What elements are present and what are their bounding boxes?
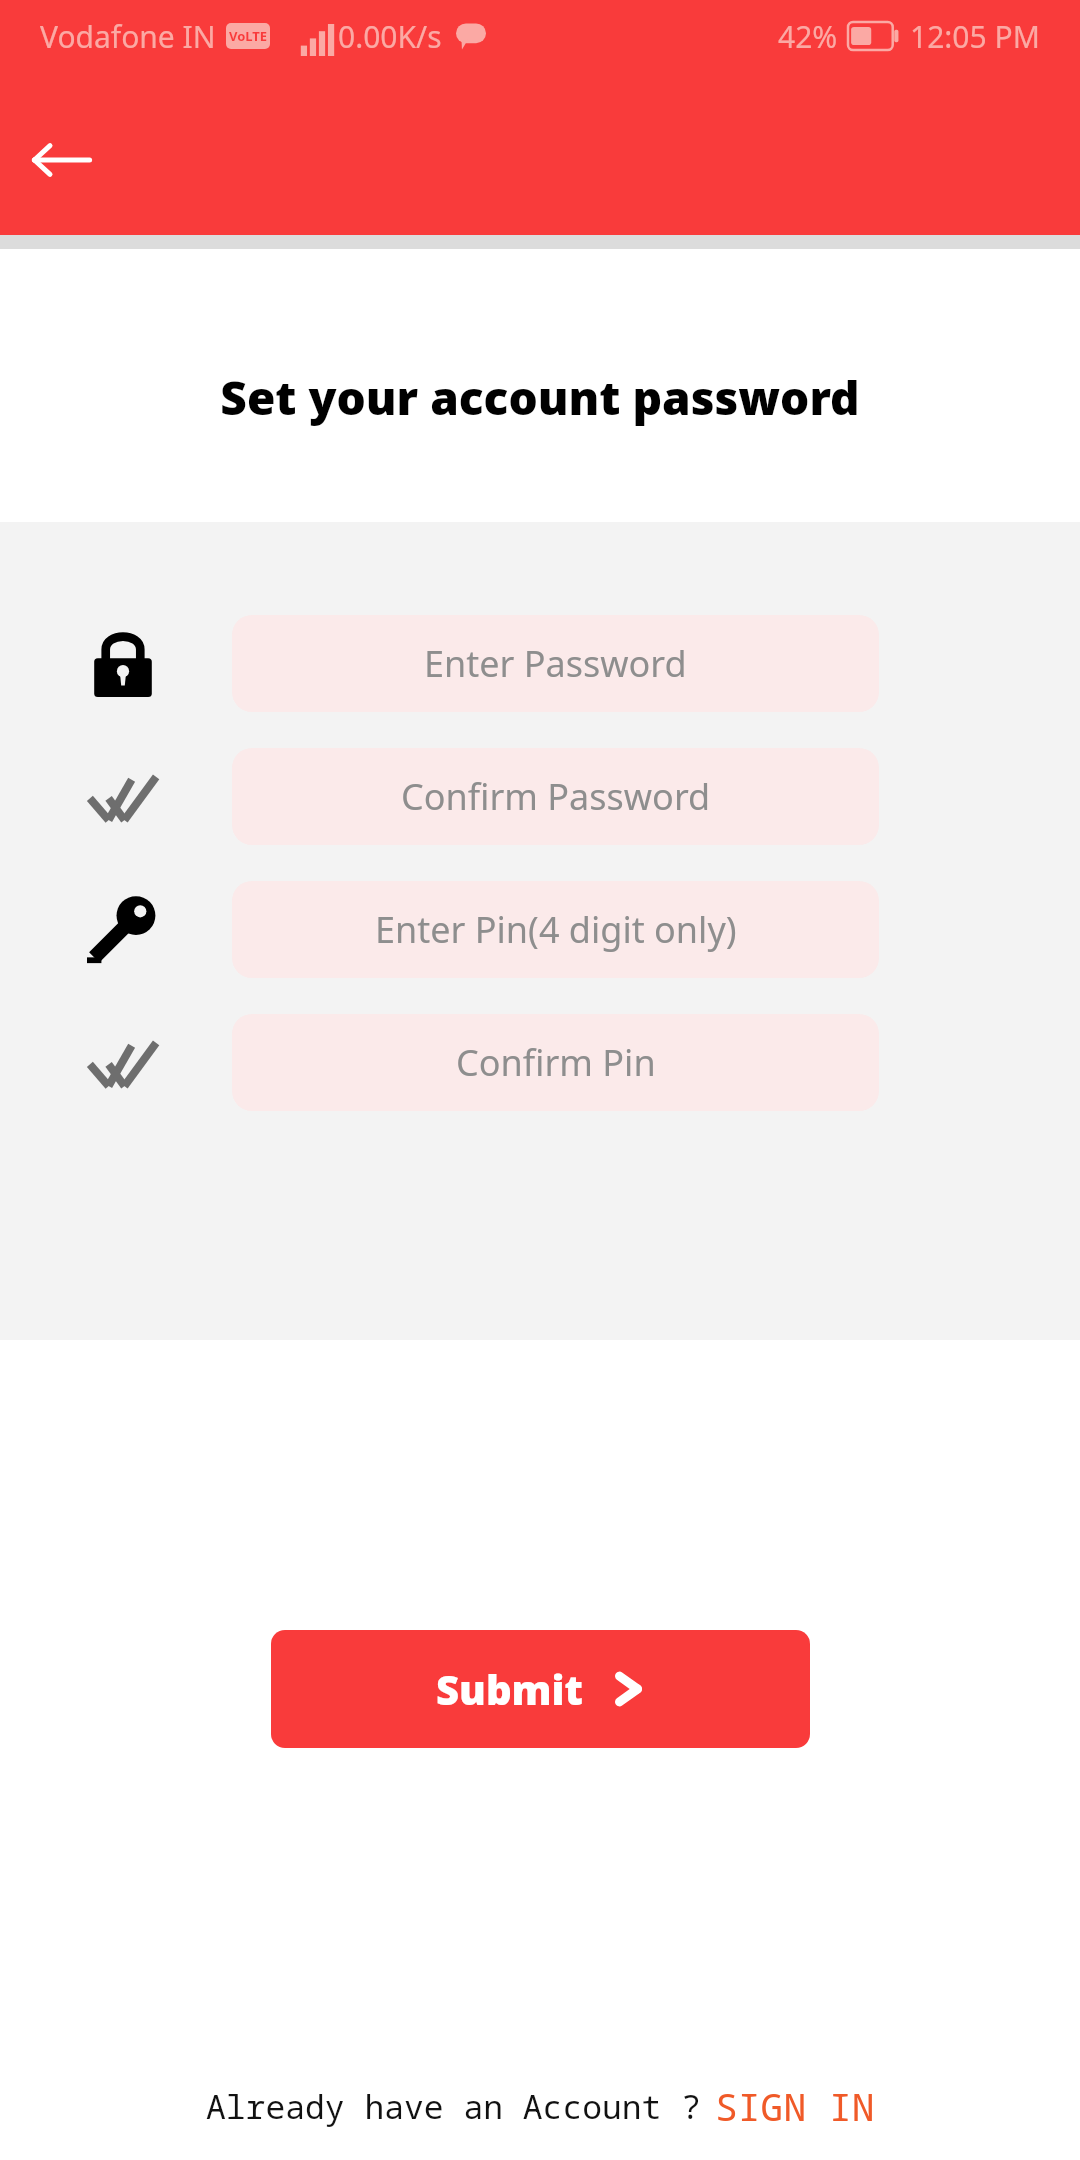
button[interactable]: Enter Pin(4 digit only) xyxy=(232,881,879,978)
staticText: Confirm Password xyxy=(401,772,711,821)
button[interactable]: Confirm Pin xyxy=(232,1014,879,1111)
staticText: Enter Password xyxy=(424,639,687,688)
staticText: 42% xyxy=(778,16,838,57)
button[interactable]: Submit xyxy=(271,1630,810,1748)
staticText: 12:05 PM xyxy=(910,16,1040,57)
button[interactable]: Back xyxy=(14,112,110,208)
staticText: Already have an Account ? xyxy=(206,2084,701,2129)
staticText: Submit xyxy=(436,1662,583,1716)
staticText: Enter Pin(4 digit only) xyxy=(375,905,737,954)
staticText: Confirm Pin xyxy=(456,1038,656,1087)
staticText: Vodafone IN xyxy=(40,16,216,57)
staticText: VoLTE xyxy=(229,27,268,45)
staticText: SIGN IN xyxy=(715,2080,875,2132)
button[interactable]: Enter Password xyxy=(232,615,879,712)
button[interactable]: Confirm Password xyxy=(232,748,879,845)
button[interactable]: SIGN IN xyxy=(715,2080,875,2132)
staticText: 0.00K/s xyxy=(338,16,442,57)
staticText: Set your account password xyxy=(220,366,860,429)
